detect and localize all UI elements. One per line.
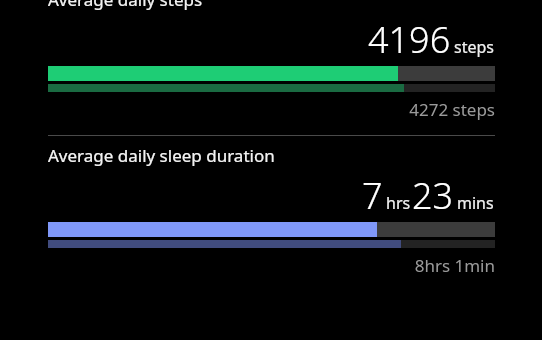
staticText: 4196 — [368, 15, 451, 64]
staticText: 4272 steps — [48, 98, 495, 121]
button[interactable]: Average daily sleep duration — [48, 144, 495, 277]
staticText: hrs — [386, 192, 411, 214]
staticText: 23 — [412, 171, 454, 220]
staticText: mins — [457, 192, 494, 214]
staticText: steps — [454, 36, 494, 58]
staticText: Average daily sleep duration — [48, 144, 275, 167]
staticText: Average daily steps — [48, 0, 203, 11]
staticText: 7 — [362, 171, 383, 220]
button[interactable]: Average daily steps — [48, 0, 495, 121]
staticText: 8hrs 1min — [48, 254, 495, 277]
